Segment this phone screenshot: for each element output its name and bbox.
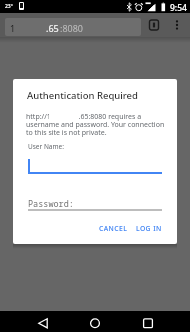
button[interactable]: More options [168, 16, 186, 34]
staticText: 23° [5, 3, 13, 10]
staticText: User Name: [28, 142, 64, 151]
staticText: http://192.168.1.65:8080 requires a user… [26, 112, 165, 137]
button[interactable]: Recent apps [138, 311, 158, 332]
button[interactable]: CANCEL [96, 219, 130, 238]
button[interactable]: Reader mode [145, 16, 163, 34]
button[interactable]: Home [85, 311, 105, 332]
staticText: 1 [10, 22, 16, 34]
button[interactable]: 1 [5, 18, 141, 36]
staticText: :8080 [60, 22, 84, 34]
staticText: Authentication Required [27, 89, 138, 102]
staticText: LOG IN [136, 224, 162, 233]
staticText: Password: [28, 198, 74, 210]
staticText: 9:54 [170, 2, 187, 14]
staticText: CANCEL [99, 224, 128, 233]
button[interactable]: Back [35, 311, 55, 332]
staticText: .65 [46, 22, 59, 34]
button[interactable]: LOG IN [132, 219, 166, 238]
